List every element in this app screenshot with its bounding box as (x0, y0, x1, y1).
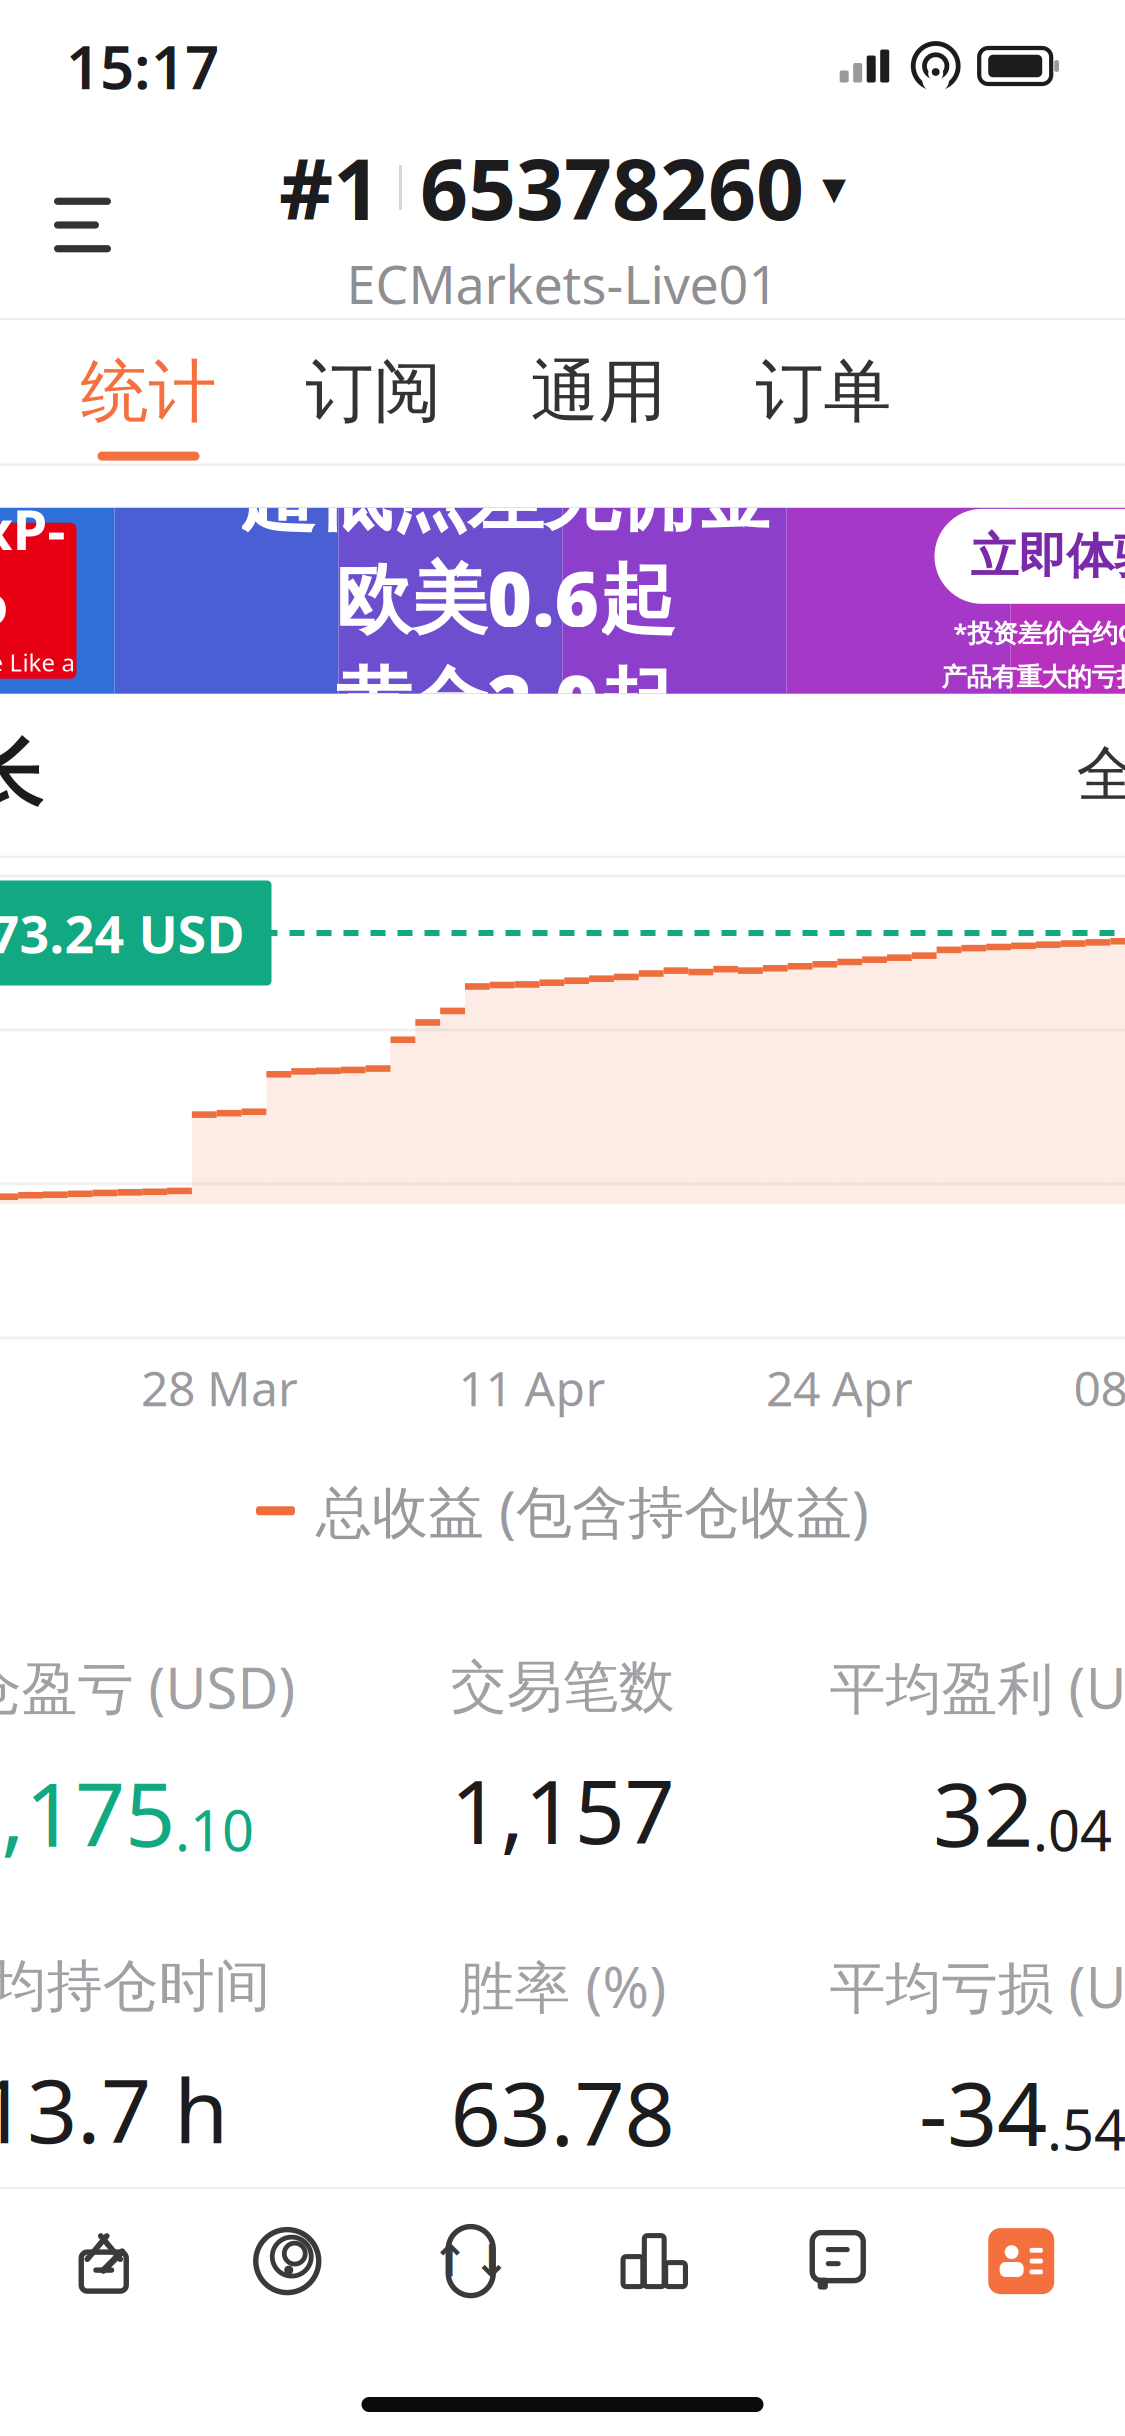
staticText: 32 (933, 1754, 1033, 1871)
staticText: 欧美0.6起 (335, 546, 675, 647)
button[interactable]: 通用 (486, 320, 711, 464)
button[interactable]: FxPro (0, 466, 1125, 694)
staticText: 产品有重大的亏损风险 (941, 661, 1125, 693)
staticText: 胜率 (%) (458, 1949, 666, 2024)
staticText: -34 (919, 2053, 1047, 2170)
staticText: 统计 (80, 350, 216, 434)
button[interactable]: 订单 (711, 320, 936, 464)
staticText: Trade Like a Pro (0, 646, 74, 710)
staticText: 8,773.24 USD (0, 898, 244, 968)
button[interactable]: Messages (746, 2225, 929, 2297)
staticText: ↑ (431, 2236, 468, 2286)
staticText: 超低点差无佣金 (239, 450, 771, 543)
staticText: 15:17 (66, 26, 219, 106)
staticText: 交易笔数 (450, 1653, 674, 1721)
staticText: ECMarkets-Live01 (346, 249, 778, 318)
staticText: .04 (1033, 1792, 1112, 1867)
staticText: ▾ (822, 160, 846, 215)
button[interactable]: Trade (379, 2225, 562, 2297)
staticText: 黄金2.0起 (335, 650, 675, 751)
staticText: 63.78 (450, 2053, 674, 2170)
button[interactable]: Signals (195, 2225, 379, 2297)
staticText: ↓ (473, 2236, 510, 2286)
staticText: 立即体验 (970, 527, 1125, 586)
staticText: FxPro (0, 491, 65, 640)
staticText: 通用 (530, 350, 666, 434)
button[interactable]: Profile (929, 2225, 1113, 2297)
staticText: 11 Apr (458, 1356, 605, 1419)
staticText: 13.7 h (0, 2051, 228, 2168)
staticText: .10 (175, 1792, 254, 1867)
button[interactable]: 全部 (1046, 720, 1125, 830)
button[interactable]: Statistics (562, 2225, 746, 2297)
staticText: .54 (1047, 2091, 1125, 2166)
staticText: 平均盈利 (USD) (829, 1650, 1125, 1724)
button[interactable]: Home (12, 2225, 195, 2297)
staticText: 28 Mar (141, 1356, 298, 1419)
staticText: 08 May (1073, 1356, 1125, 1419)
button[interactable]: 统计 (36, 320, 261, 464)
button[interactable]: 订阅 (261, 320, 486, 464)
staticText: 65378260 (420, 132, 804, 243)
staticText: 订阅 (305, 350, 441, 434)
staticText: 平仓盈亏 (USD) (0, 1650, 295, 1724)
staticText: 24 Apr (766, 1356, 913, 1419)
staticText: *投资差价合约CFDs (953, 616, 1125, 649)
staticText: 总收益 (包含持仓收益) (316, 1474, 869, 1548)
staticText: #1 (279, 132, 381, 243)
button[interactable]: Menu (18, 162, 147, 288)
staticText: 成长 (0, 728, 42, 821)
staticText: 全部 (1076, 738, 1125, 812)
staticText: 1,157 (450, 1751, 674, 1868)
staticText: 平均亏损 (USD) (829, 1949, 1125, 2024)
staticText: 平均持仓时间 (0, 1952, 270, 2021)
staticText: 订单 (755, 350, 891, 434)
staticText: 9,175 (0, 1754, 175, 1871)
